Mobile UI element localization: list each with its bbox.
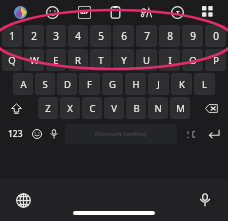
staticText: J	[157, 78, 160, 91]
staticText: A	[20, 78, 27, 91]
button[interactable]: 9	[182, 25, 203, 47]
button[interactable]: R	[68, 49, 88, 71]
button[interactable]: Y	[113, 49, 134, 71]
button[interactable]: J	[148, 73, 169, 95]
staticText: F	[87, 78, 92, 91]
staticText: 1	[9, 29, 15, 43]
button[interactable]: B	[126, 97, 146, 119]
button[interactable]: 2	[24, 25, 44, 47]
button[interactable]: I	[159, 49, 180, 71]
staticText: D	[64, 78, 71, 91]
staticText: E	[53, 54, 59, 67]
staticText: 8	[167, 29, 173, 43]
button[interactable]: Change language	[12, 189, 34, 211]
button[interactable]: M	[170, 97, 190, 119]
staticText: 6	[121, 29, 127, 43]
button[interactable]: Voice input	[46, 121, 62, 147]
staticText: X	[67, 102, 73, 115]
button[interactable]: W	[24, 49, 44, 71]
button[interactable]: H	[125, 73, 146, 95]
button[interactable]: Symbols	[180, 121, 202, 147]
button[interactable]: U	[136, 49, 157, 71]
button[interactable]: Backspace	[197, 97, 226, 119]
button[interactable]: Shift	[2, 97, 31, 119]
staticText: 123	[8, 128, 23, 140]
button[interactable]: A	[13, 73, 33, 95]
staticText: N	[154, 102, 162, 115]
staticText: 7	[144, 29, 150, 43]
button[interactable]: 123	[2, 121, 28, 147]
staticText: L	[202, 78, 207, 91]
button[interactable]: Clipboard	[100, 0, 131, 24]
staticText: Y	[121, 54, 127, 67]
button[interactable]: V	[104, 97, 124, 119]
button[interactable]: N	[148, 97, 168, 119]
staticText: H	[132, 78, 140, 91]
staticText: Microsoft SwiftKey	[95, 130, 147, 138]
staticText: GIF	[80, 9, 89, 16]
staticText: Z	[45, 102, 51, 115]
button[interactable]: Enter	[202, 121, 226, 147]
button[interactable]: 0	[205, 25, 226, 47]
button[interactable]: D	[57, 73, 77, 95]
button[interactable]: 1	[2, 25, 22, 47]
staticText: O	[189, 54, 197, 67]
button[interactable]: Microsoft SwiftKey	[65, 124, 177, 144]
staticText: G	[109, 78, 116, 91]
staticText: U	[143, 54, 150, 67]
button[interactable]: Stickers	[131, 0, 162, 24]
button[interactable]: 4	[68, 25, 88, 47]
button[interactable]: S	[35, 73, 55, 95]
staticText: 3	[53, 29, 59, 43]
button[interactable]: Text editing	[162, 0, 193, 24]
staticText: W	[30, 54, 39, 67]
staticText: P	[213, 54, 219, 67]
staticText: T	[98, 54, 104, 67]
staticText: K	[179, 78, 185, 91]
staticText: 5	[98, 29, 104, 43]
button[interactable]: P	[205, 49, 226, 71]
button[interactable]: E	[46, 49, 66, 71]
button[interactable]: K	[171, 73, 192, 95]
button[interactable]: Emoji	[36, 0, 68, 24]
staticText: T	[176, 9, 180, 17]
button[interactable]: 5	[90, 25, 111, 47]
staticText: M	[176, 102, 185, 115]
button[interactable]: 6	[113, 25, 134, 47]
staticText: V	[111, 102, 117, 115]
staticText: C	[89, 102, 96, 115]
staticText: 9	[190, 29, 196, 43]
button[interactable]: SwiftKey	[4, 0, 36, 24]
button[interactable]: Emoji	[28, 121, 46, 147]
button[interactable]: Q	[2, 49, 22, 71]
button[interactable]: X	[60, 97, 80, 119]
button[interactable]: O	[182, 49, 203, 71]
button[interactable]: C	[82, 97, 102, 119]
staticText: S	[42, 78, 48, 91]
button[interactable]: L	[194, 73, 215, 95]
staticText: R	[75, 54, 81, 67]
button[interactable]: G	[102, 73, 123, 95]
staticText: 0	[213, 29, 219, 43]
staticText: 4	[75, 29, 81, 43]
button[interactable]: 3	[46, 25, 66, 47]
button[interactable]: F	[79, 73, 100, 95]
button[interactable]: T	[90, 49, 111, 71]
button[interactable]: GIF	[68, 0, 100, 24]
staticText: B	[133, 102, 140, 115]
staticText: Q	[8, 54, 16, 67]
button[interactable]: 8	[159, 25, 180, 47]
button[interactable]: Z	[38, 97, 58, 119]
staticText: 2	[31, 29, 37, 43]
button[interactable]: 7	[136, 25, 157, 47]
staticText: I	[168, 54, 172, 67]
button[interactable]: More	[193, 0, 224, 24]
button[interactable]: Voice input	[194, 189, 216, 211]
